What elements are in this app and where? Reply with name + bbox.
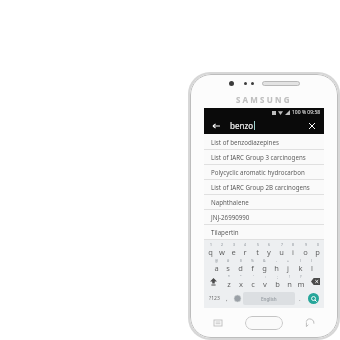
staticText: ;: [277, 274, 278, 279]
button[interactable]: JNJ-26990990: [204, 210, 324, 225]
button[interactable]: List of IARC Group 3 carcinogens: [204, 150, 324, 165]
staticText: c: [251, 279, 255, 289]
staticText: m: [297, 279, 305, 289]
staticText: 8: [292, 242, 294, 247]
button[interactable]: 4: [239, 241, 251, 257]
staticText: 9: [305, 242, 307, 247]
staticText: h: [274, 263, 279, 273]
button[interactable]: Search: [308, 293, 319, 304]
staticText: f: [251, 263, 254, 273]
button[interactable]: Polycyclic aromatic hydrocarbon: [204, 165, 324, 180]
button[interactable]: 5: [251, 241, 263, 257]
staticText: w: [219, 247, 225, 257]
button[interactable]: Naphthalene: [204, 195, 324, 210]
button[interactable]: Back: [304, 317, 316, 329]
staticText: j: [287, 263, 289, 273]
button[interactable]: !: [283, 273, 295, 290]
button[interactable]: :: [259, 273, 271, 290]
staticText: p: [315, 247, 320, 257]
button[interactable]: 0: [311, 241, 323, 257]
button[interactable]: ,: [222, 291, 232, 306]
button[interactable]: (: [294, 257, 306, 273]
staticText: &: [263, 258, 266, 263]
staticText: ): [311, 258, 313, 263]
staticText: List of IARC Group 2B carcinogens: [211, 183, 310, 191]
staticText: (: [300, 258, 302, 263]
button[interactable]: &: [258, 257, 270, 273]
staticText: Polycyclic aromatic hydrocarbon: [211, 168, 305, 176]
staticText: l: [311, 263, 313, 273]
staticText: b: [275, 279, 280, 289]
button[interactable]: ?123: [206, 291, 222, 306]
staticText: k: [298, 263, 303, 273]
button[interactable]: 8: [287, 241, 299, 257]
staticText: SAMSUNG: [236, 94, 292, 105]
button[interactable]: #: [222, 257, 234, 273]
staticText: benzo: [230, 120, 253, 131]
staticText: g: [262, 263, 267, 273]
staticText: 2: [221, 242, 223, 247]
staticText: d: [238, 263, 243, 273]
staticText: -: [276, 258, 278, 263]
staticText: 6: [268, 242, 270, 247]
button[interactable]: Shift: [205, 273, 222, 290]
staticText: ?: [300, 274, 302, 279]
staticText: y: [267, 247, 271, 257]
staticText: @: [215, 258, 219, 263]
staticText: %: [251, 258, 254, 263]
button[interactable]: $: [234, 257, 246, 273]
button[interactable]: Change language: [232, 291, 243, 306]
staticText: 4: [244, 242, 246, 247]
button[interactable]: .: [295, 291, 305, 306]
button[interactable]: 9: [299, 241, 311, 257]
staticText: English: [261, 296, 277, 302]
button[interactable]: Recent apps: [212, 317, 224, 329]
button[interactable]: Back: [210, 120, 222, 132]
staticText: $: [240, 258, 242, 263]
staticText: Tilapertin: [211, 228, 239, 236]
button[interactable]: 1: [205, 241, 216, 257]
button[interactable]: Home: [245, 316, 283, 330]
button[interactable]: ': [247, 273, 259, 290]
staticText: x: [239, 279, 243, 289]
button[interactable]: 7: [275, 241, 287, 257]
staticText: .: [299, 295, 301, 303]
button[interactable]: Clear search: [306, 120, 318, 132]
button[interactable]: Backspace: [307, 273, 323, 290]
staticText: !: [289, 274, 290, 279]
staticText: #: [227, 258, 230, 263]
staticText: ': [253, 274, 254, 279]
staticText: 5: [257, 242, 259, 247]
staticText: s: [226, 263, 230, 273]
button[interactable]: 6: [263, 241, 275, 257]
button[interactable]: 3: [227, 241, 239, 257]
button[interactable]: Tilapertin: [204, 225, 324, 240]
staticText: 3: [233, 242, 235, 247]
staticText: r: [243, 247, 247, 257]
button[interactable]: English: [243, 292, 295, 305]
button[interactable]: ": [235, 273, 247, 290]
staticText: o: [303, 247, 308, 257]
staticText: ,: [226, 295, 228, 303]
staticText: n: [287, 279, 292, 289]
button[interactable]: ): [306, 257, 318, 273]
staticText: :: [265, 274, 266, 279]
button[interactable]: %: [246, 257, 258, 273]
staticText: +: [287, 258, 289, 263]
staticText: ?123: [209, 295, 220, 302]
button[interactable]: ;: [271, 273, 283, 290]
staticText: z: [227, 279, 231, 289]
button[interactable]: List of IARC Group 2B carcinogens: [204, 180, 324, 195]
button[interactable]: @: [210, 257, 222, 273]
staticText: JNJ-26990990: [211, 213, 250, 221]
button[interactable]: *: [222, 273, 235, 290]
staticText: List of IARC Group 3 carcinogens: [211, 153, 306, 161]
staticText: t: [256, 247, 259, 257]
staticText: v: [263, 279, 267, 289]
button[interactable]: List of benzodiazepines: [204, 134, 324, 150]
button[interactable]: 2: [216, 241, 227, 257]
button[interactable]: -: [270, 257, 282, 273]
staticText: ": [240, 274, 242, 279]
button[interactable]: ?: [295, 273, 307, 290]
button[interactable]: +: [282, 257, 294, 273]
